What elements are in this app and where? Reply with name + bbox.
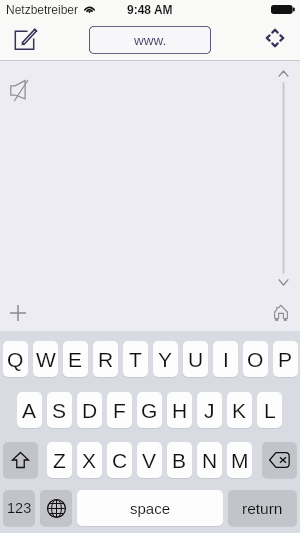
button[interactable]: E: [63, 341, 88, 377]
staticText: W: [36, 348, 56, 371]
staticText: J: [204, 399, 215, 422]
button[interactable]: Backspace: [262, 442, 297, 478]
button[interactable]: C: [107, 442, 132, 478]
staticText: S: [52, 399, 67, 422]
button[interactable]: G: [137, 392, 162, 428]
button[interactable]: N: [197, 442, 222, 478]
staticText: R: [98, 348, 114, 371]
button[interactable]: Mute: [6, 74, 34, 102]
button[interactable]: Q: [3, 341, 28, 377]
staticText: Z: [53, 449, 66, 472]
staticText: V: [142, 449, 157, 472]
button[interactable]: space: [77, 490, 223, 526]
button[interactable]: H: [167, 392, 192, 428]
button[interactable]: B: [167, 442, 192, 478]
staticText: Y: [158, 348, 173, 371]
staticText: 123: [7, 500, 32, 516]
button[interactable]: www.: [89, 26, 211, 54]
button[interactable]: K: [227, 392, 252, 428]
staticText: M: [231, 449, 249, 472]
button[interactable]: J: [197, 392, 222, 428]
staticText: T: [129, 348, 142, 371]
button[interactable]: U: [183, 341, 208, 377]
staticText: L: [264, 399, 276, 422]
staticText: N: [202, 449, 218, 472]
button[interactable]: 123: [3, 490, 35, 526]
staticText: P: [278, 348, 293, 371]
staticText: B: [172, 449, 187, 472]
staticText: O: [247, 348, 264, 371]
staticText: 9:48 AM: [127, 3, 173, 16]
button[interactable]: Home: [270, 301, 292, 323]
button[interactable]: return: [228, 490, 297, 526]
button[interactable]: Language: [40, 490, 72, 526]
button[interactable]: P: [273, 341, 298, 377]
button[interactable]: Z: [47, 442, 72, 478]
button[interactable]: Shift: [3, 442, 38, 478]
button[interactable]: X: [77, 442, 102, 478]
button[interactable]: M: [227, 442, 252, 478]
button[interactable]: L: [257, 392, 282, 428]
staticText: E: [68, 348, 83, 371]
staticText: return: [242, 500, 283, 517]
button[interactable]: I: [213, 341, 238, 377]
staticText: U: [188, 348, 204, 371]
button[interactable]: A: [17, 392, 42, 428]
button[interactable]: Y: [153, 341, 178, 377]
button[interactable]: S: [47, 392, 72, 428]
staticText: D: [82, 399, 98, 422]
staticText: www.: [134, 33, 167, 48]
button[interactable]: O: [243, 341, 268, 377]
staticText: F: [113, 399, 126, 422]
button[interactable]: D: [77, 392, 102, 428]
button[interactable]: V: [137, 442, 162, 478]
button[interactable]: Compose: [5, 25, 41, 54]
button[interactable]: F: [107, 392, 132, 428]
staticText: A: [22, 399, 37, 422]
staticText: K: [232, 399, 247, 422]
button[interactable]: Add: [7, 302, 28, 323]
button[interactable]: W: [33, 341, 58, 377]
staticText: H: [172, 399, 188, 422]
staticText: G: [141, 399, 158, 422]
staticText: X: [82, 449, 97, 472]
button[interactable]: R: [93, 341, 118, 377]
staticText: Q: [7, 348, 24, 371]
button[interactable]: Expand: [259, 22, 291, 54]
staticText: C: [112, 449, 128, 472]
staticText: I: [223, 348, 229, 371]
button[interactable]: T: [123, 341, 148, 377]
staticText: Netzbetreiber: [6, 3, 79, 16]
staticText: space: [130, 500, 171, 517]
